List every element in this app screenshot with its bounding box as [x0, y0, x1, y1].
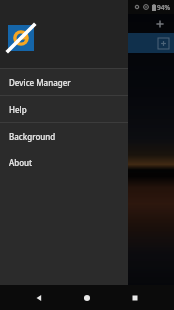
button[interactable]: Background: [0, 123, 128, 149]
other: Open: [158, 38, 169, 49]
staticText: 94%: [157, 3, 170, 12]
button[interactable]: Device Manager: [0, 69, 128, 95]
staticText: Device Manager: [9, 77, 71, 88]
button[interactable]: Help: [0, 96, 128, 122]
button[interactable]: About: [0, 149, 128, 175]
staticText: Help: [9, 104, 27, 115]
button[interactable]: Recents: [126, 289, 144, 307]
button[interactable]: Add: [154, 18, 166, 30]
button[interactable]: Expand: [0, 101, 174, 115]
staticText: About: [9, 157, 33, 168]
button[interactable]: App logo: [8, 25, 34, 51]
button[interactable]: Back: [30, 289, 48, 307]
button[interactable]: Power: [102, 122, 122, 142]
staticText: Background: [9, 131, 56, 142]
button[interactable]: Home: [78, 289, 96, 307]
button[interactable]: Open: [0, 33, 174, 53]
button[interactable]: Expand: [0, 53, 174, 67]
